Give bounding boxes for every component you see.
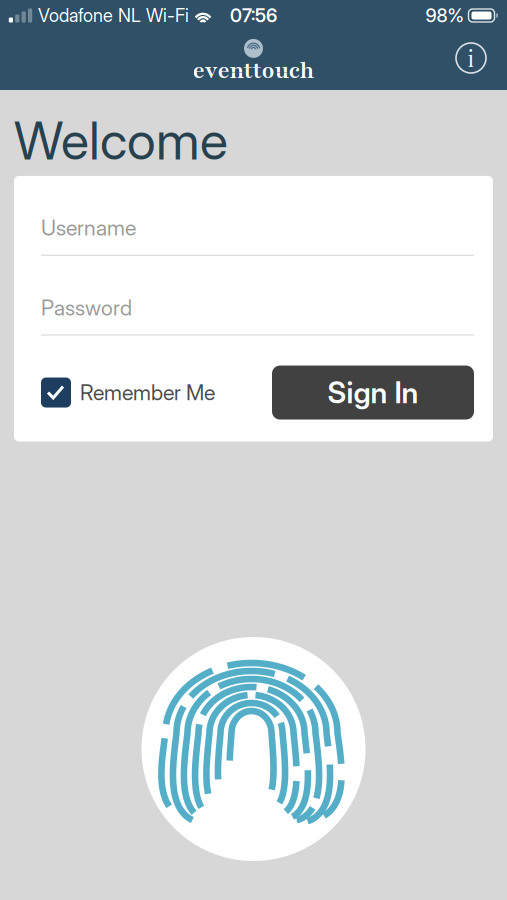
- staticText: 98%: [425, 4, 463, 27]
- button[interactable]: Information: [449, 36, 493, 85]
- staticText: eventtouch: [192, 55, 314, 86]
- button[interactable]: Sign in with Touch ID: [141, 637, 365, 861]
- staticText: i: [467, 42, 474, 73]
- staticText: 07:56: [230, 4, 277, 27]
- button[interactable]: Username: [41, 215, 474, 256]
- staticText: Vodafone NL Wi-Fi: [38, 4, 189, 26]
- staticText: Password: [41, 295, 132, 320]
- button[interactable]: Password: [41, 295, 474, 335]
- staticText: Welcome: [14, 109, 228, 172]
- button[interactable]: Sign In: [272, 365, 474, 419]
- button[interactable]: Remember Me: [41, 371, 215, 413]
- staticText: Remember Me: [80, 380, 215, 405]
- staticText: Sign In: [327, 375, 418, 410]
- staticText: Username: [41, 215, 136, 241]
